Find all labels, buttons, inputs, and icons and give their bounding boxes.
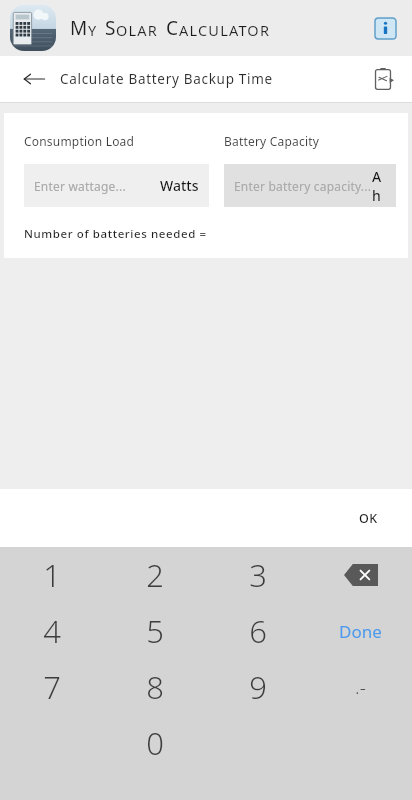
staticText: Battery Capacity [224,133,320,149]
staticText: 6 [249,610,267,652]
staticText: 2 [146,554,164,596]
staticText: Calculate Battery Backup Time [60,70,273,88]
button[interactable]: 1 [0,547,103,603]
button[interactable]: 7 [0,659,103,715]
staticText: 4 [43,610,61,652]
button[interactable]: Enter wattage... [24,164,209,207]
button[interactable]: OK [349,504,388,533]
staticText: ALCULATOR [179,20,271,40]
staticText: 3 [249,554,267,596]
button[interactable]: 2 [103,547,206,603]
staticText: 7 [43,666,61,708]
staticText: Watts [160,176,199,195]
button[interactable]: Done [309,603,412,659]
staticText: Number of batteries needed = [24,226,207,242]
staticText: Done [339,620,382,643]
button[interactable]: 5 [103,603,206,659]
button[interactable]: 6 [206,603,309,659]
button[interactable]: Enter battery capacity... [224,164,396,207]
staticText: Enter battery capacity... [234,178,372,194]
button[interactable]: Backspace [309,547,412,603]
staticText: 8 [146,666,164,708]
button[interactable]: Back [14,59,54,99]
button[interactable]: .- [309,659,412,715]
staticText: S [105,15,116,41]
staticText: 9 [249,666,267,708]
button[interactable]: Information [368,11,402,45]
staticText: Ah [372,167,386,205]
button[interactable]: 0 [103,715,206,771]
button[interactable]: 3 [206,547,309,603]
staticText: Y [88,20,98,40]
staticText: .- [355,674,366,700]
staticText: 0 [146,722,164,764]
button[interactable]: 8 [103,659,206,715]
staticText: 1 [43,554,61,596]
staticText: 5 [146,610,164,652]
staticText: M [70,15,88,41]
button[interactable]: Battery backup [366,62,400,96]
staticText: OLAR [116,20,159,40]
staticText: C [166,15,179,41]
staticText: Enter wattage... [34,178,126,194]
button[interactable] [10,5,56,51]
button[interactable]: 4 [0,603,103,659]
staticText: Consumption Load [24,133,224,149]
staticText: OK [359,510,378,527]
button[interactable]: 9 [206,659,309,715]
